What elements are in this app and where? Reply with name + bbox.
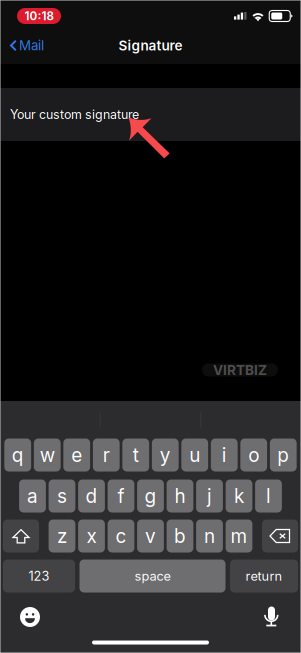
button[interactable]: f xyxy=(108,479,134,512)
button[interactable]: a xyxy=(19,479,46,512)
button[interactable]: Delete xyxy=(262,519,298,552)
staticText: i xyxy=(222,443,227,466)
button[interactable]: h xyxy=(167,479,193,512)
button[interactable]: 123 xyxy=(3,559,75,592)
staticText: 123 xyxy=(28,568,49,584)
button[interactable]: n xyxy=(196,519,223,552)
staticText: r xyxy=(103,443,110,466)
button[interactable]: q xyxy=(4,438,31,471)
staticText: space xyxy=(134,568,170,584)
staticText: return xyxy=(245,568,282,584)
staticText: n xyxy=(204,524,215,547)
staticText: h xyxy=(174,484,185,507)
button[interactable]: z xyxy=(49,519,75,552)
button[interactable]: c xyxy=(108,519,134,552)
staticText: j xyxy=(207,484,212,507)
staticText: f xyxy=(117,484,124,507)
button[interactable]: Dictation xyxy=(254,602,301,631)
button[interactable]: g xyxy=(137,479,164,512)
staticText: b xyxy=(174,524,186,547)
staticText: q xyxy=(12,443,24,466)
staticText: g xyxy=(144,484,156,507)
button[interactable]: d xyxy=(78,479,105,512)
button[interactable]: s xyxy=(49,479,75,512)
staticText: v xyxy=(145,524,156,547)
staticText: x xyxy=(86,524,96,547)
button[interactable]: x xyxy=(78,519,105,552)
button[interactable]: Your custom signature xyxy=(0,88,301,141)
button[interactable]: Shift xyxy=(3,519,39,552)
button[interactable]: o xyxy=(240,438,267,471)
staticText: VIRTBIZ xyxy=(213,362,267,378)
button[interactable]: b xyxy=(167,519,193,552)
staticText: p xyxy=(277,443,289,466)
staticText: Your custom signature xyxy=(10,107,139,122)
staticText: 10:18 xyxy=(24,9,53,23)
button[interactable]: m xyxy=(226,519,252,552)
button[interactable]: Emoji keyboard xyxy=(0,602,50,632)
staticText: m xyxy=(230,524,247,547)
staticText: d xyxy=(85,484,97,507)
staticText: a xyxy=(27,484,38,507)
button[interactable]: u xyxy=(181,438,208,471)
staticText: Mail xyxy=(19,37,44,53)
button[interactable]: p xyxy=(270,438,297,471)
staticText: s xyxy=(57,484,67,507)
staticText: w xyxy=(40,443,55,466)
staticText: t xyxy=(133,443,139,466)
button[interactable]: y xyxy=(152,438,179,471)
button[interactable]: v xyxy=(137,519,164,552)
staticText: z xyxy=(57,524,67,547)
staticText: Signature xyxy=(118,37,182,54)
button[interactable]: Mail xyxy=(0,31,52,59)
staticText: l xyxy=(266,484,271,507)
button[interactable]: k xyxy=(226,479,252,512)
staticText: y xyxy=(160,443,171,466)
button[interactable]: l xyxy=(255,479,282,512)
staticText: o xyxy=(248,443,259,466)
button[interactable]: j xyxy=(196,479,223,512)
staticText: k xyxy=(234,484,244,507)
button[interactable]: t xyxy=(122,438,149,471)
button[interactable]: i xyxy=(211,438,238,471)
staticText: u xyxy=(189,443,200,466)
button[interactable]: return xyxy=(230,559,298,592)
button[interactable]: space xyxy=(79,559,225,592)
button[interactable]: r xyxy=(93,438,120,471)
button[interactable]: e xyxy=(63,438,90,471)
staticText: c xyxy=(115,524,126,547)
staticText: e xyxy=(71,443,82,466)
button[interactable]: w xyxy=(34,438,61,471)
